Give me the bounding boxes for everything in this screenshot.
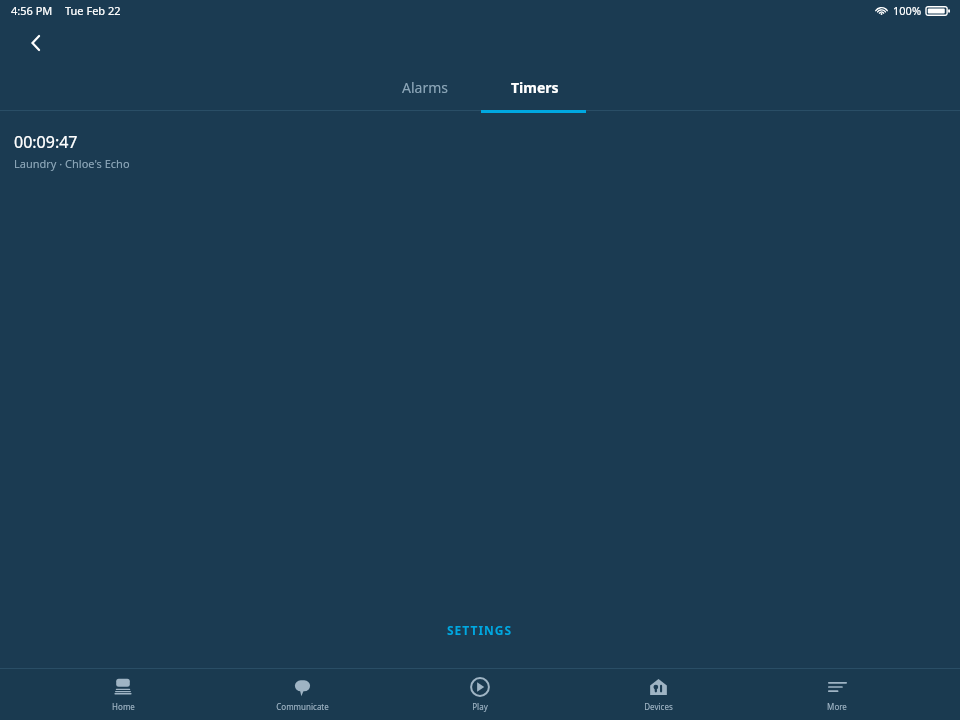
button[interactable]: SETTINGS xyxy=(431,614,529,646)
button[interactable]: Communicate xyxy=(247,668,357,720)
staticText: Play xyxy=(472,701,488,712)
button[interactable]: Alarms xyxy=(370,65,480,110)
button[interactable]: Home xyxy=(68,668,178,720)
staticText: Home xyxy=(112,701,135,712)
staticText: 00:09:47 xyxy=(14,131,78,153)
staticText: Timers xyxy=(511,78,559,97)
staticText: Communicate xyxy=(276,701,329,712)
button[interactable]: More xyxy=(782,668,892,720)
staticText: More xyxy=(827,701,847,712)
button[interactable]: Devices xyxy=(603,668,713,720)
button[interactable]: 00:09:47 xyxy=(0,113,960,171)
staticText: Alarms xyxy=(402,78,448,97)
button[interactable]: Timers xyxy=(480,65,590,110)
staticText: Laundry · Chloe's Echo xyxy=(14,156,130,171)
button[interactable]: Play xyxy=(425,668,535,720)
staticText: 4:56 PM xyxy=(11,3,53,18)
button[interactable]: Back xyxy=(16,23,56,63)
staticText: Devices xyxy=(644,701,673,712)
staticText: 100% xyxy=(893,3,922,18)
staticText: SETTINGS xyxy=(447,622,513,638)
staticText: Tue Feb 22 xyxy=(65,3,121,18)
